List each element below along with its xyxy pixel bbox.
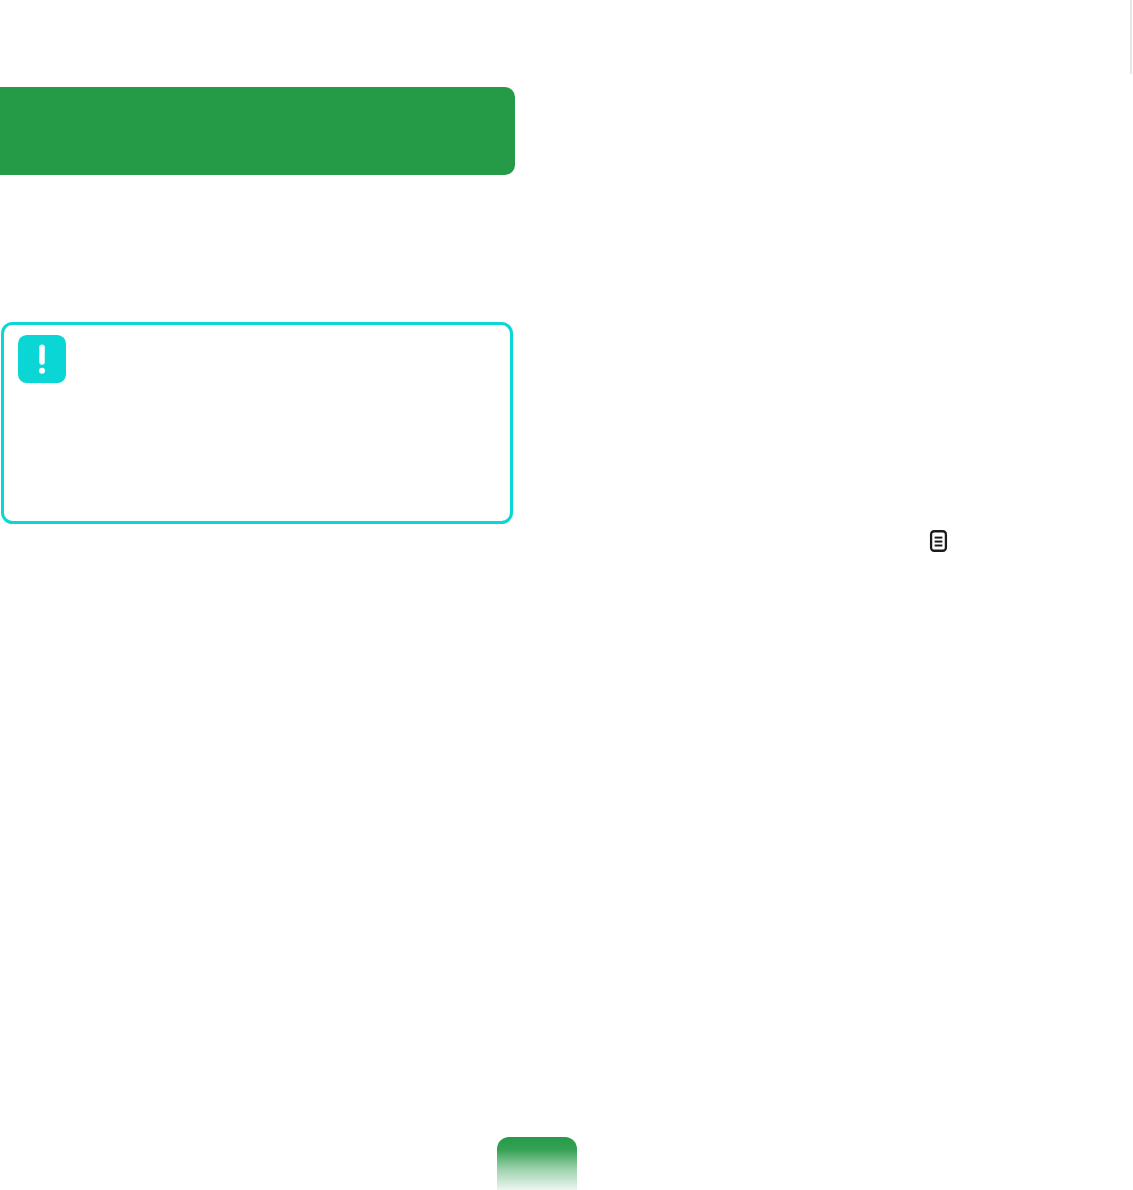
button[interactable]: Document [929,530,948,552]
button[interactable] [497,1137,577,1190]
other: Important notice [18,335,66,383]
button[interactable] [0,87,515,175]
button[interactable]: Important notice [1,322,513,524]
